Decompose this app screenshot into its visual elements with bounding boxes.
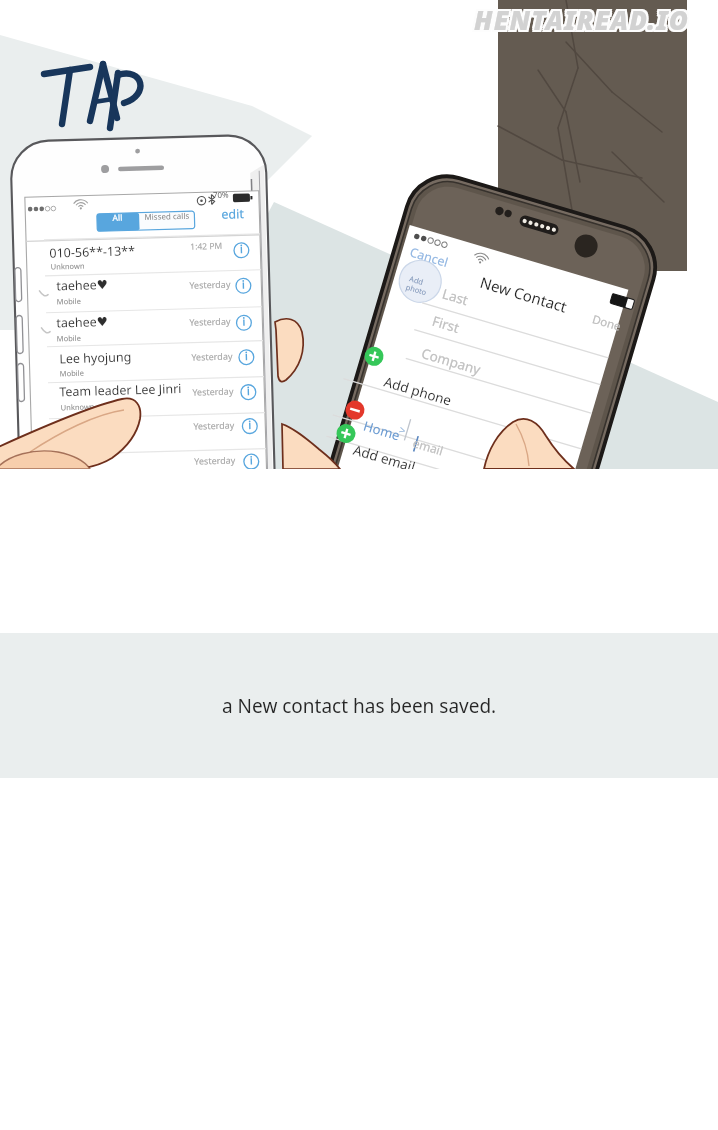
staticText: Team leader Lee Jinri — [59, 380, 182, 400]
staticText: edit — [221, 205, 245, 223]
staticText: Company — [419, 344, 483, 379]
staticText: Yesterday — [192, 384, 234, 398]
staticText: Add phone — [382, 373, 454, 410]
staticText: Mobile — [57, 333, 82, 343]
button[interactable]: HentaiRead.io — [474, 2, 690, 37]
staticText: HENTAIREAD.IO — [476, 0, 692, 35]
staticText: 010-56**-13** — [49, 242, 136, 262]
staticText: photo — [405, 282, 429, 297]
staticText: Unknown — [51, 261, 85, 272]
staticText: First — [430, 312, 462, 337]
staticText: Yesterday — [193, 418, 235, 432]
staticText: All — [112, 212, 123, 224]
staticText: HENTAIREAD.IO — [476, 2, 692, 37]
staticText: Add — [408, 273, 425, 287]
staticText: Home — [361, 417, 402, 444]
staticText: Missed calls — [144, 210, 190, 222]
staticText: 70% — [213, 189, 229, 200]
staticText: HENTAIREAD.IO — [474, 4, 690, 39]
staticText: a New contact has been saved. — [222, 693, 497, 719]
staticText: Mobile — [57, 296, 82, 306]
staticText: HENTAIREAD.IO — [476, 4, 692, 39]
staticText: HENTAIREAD.IO — [474, 0, 690, 35]
staticText: email — [411, 434, 445, 458]
staticText: Yesterday — [189, 278, 231, 291]
staticText: Last — [440, 285, 470, 309]
staticText: Unknown — [61, 401, 95, 412]
staticText: Add email — [351, 441, 418, 469]
staticText: taehee♥ — [56, 276, 109, 294]
staticText: Done — [590, 311, 623, 335]
staticText: Yesterday — [194, 453, 236, 467]
staticText: HENTAIREAD.IO — [472, 4, 688, 39]
staticText: HENTAIREAD.IO — [472, 0, 688, 35]
staticText: taehee♥ — [56, 313, 109, 331]
staticText: 1:42 PM — [190, 240, 222, 253]
staticText: Cancel — [408, 244, 450, 271]
staticText: Lee hyojung — [59, 348, 131, 367]
staticText: Mobile — [60, 368, 85, 378]
staticText: HENTAIREAD.IO — [474, 2, 690, 37]
staticText: New Contact — [478, 272, 570, 317]
staticText: Yesterday — [189, 315, 231, 328]
staticText: Yesterday — [191, 350, 233, 363]
staticText: HENTAIREAD.IO — [472, 2, 688, 37]
staticText: > — [397, 422, 408, 438]
